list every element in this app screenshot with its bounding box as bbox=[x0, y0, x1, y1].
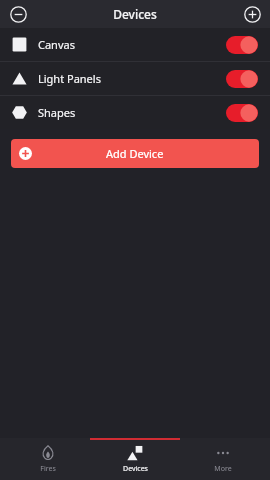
button[interactable]: Devices bbox=[95, 438, 175, 480]
button[interactable]: Canvas bbox=[0, 28, 270, 61]
button[interactable]: Light Panels bbox=[0, 62, 270, 95]
button[interactable]: Toggle bbox=[226, 36, 258, 54]
button[interactable]: Toggle bbox=[226, 70, 258, 88]
button[interactable]: Shapes bbox=[0, 96, 270, 129]
staticText: Fires bbox=[40, 464, 56, 474]
staticText: Devices bbox=[123, 464, 148, 474]
staticText: Shapes bbox=[38, 105, 76, 120]
button[interactable]: More bbox=[183, 438, 263, 480]
staticText: Devices bbox=[113, 6, 157, 22]
staticText: Add Device bbox=[106, 146, 164, 161]
button[interactable]: Add Device bbox=[11, 139, 259, 168]
staticText: Light Panels bbox=[38, 71, 101, 86]
staticText: Canvas bbox=[38, 37, 75, 52]
button[interactable]: Fires bbox=[8, 438, 88, 480]
button[interactable]: Remove device bbox=[6, 2, 30, 26]
button[interactable]: Toggle bbox=[226, 104, 258, 122]
button[interactable]: Add device bbox=[240, 2, 264, 26]
staticText: More bbox=[214, 464, 232, 474]
